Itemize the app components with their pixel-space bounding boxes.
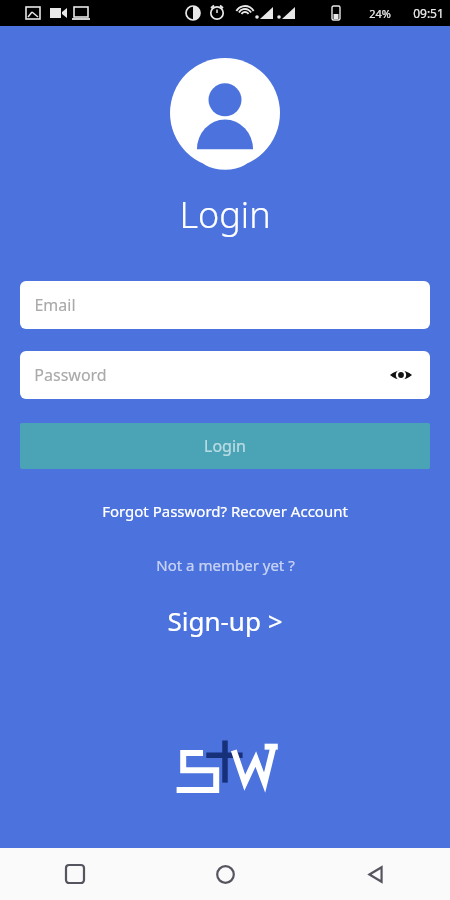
staticText: Password [34, 364, 107, 386]
button[interactable]: Sign-up > [155, 599, 295, 642]
staticText: 09:51 [413, 5, 444, 21]
button[interactable]: Email [20, 281, 430, 329]
button[interactable]: Forgot Password? Recover Account [92, 497, 358, 525]
button[interactable]: Recent apps [0, 848, 150, 900]
button[interactable]: Back [300, 848, 450, 900]
staticText: Login [204, 435, 246, 457]
staticText: 24% [369, 6, 391, 21]
staticText: Email [34, 294, 76, 316]
staticText: Not a member yet ? [156, 555, 295, 575]
button[interactable]: Password [20, 351, 430, 399]
staticText: Login [179, 190, 271, 239]
button[interactable]: Login [20, 423, 430, 469]
button[interactable]: Show password [386, 360, 416, 390]
staticText: Sign-up > [167, 603, 283, 638]
staticText: Forgot Password? Recover Account [102, 501, 348, 521]
button[interactable]: Home [150, 848, 300, 900]
